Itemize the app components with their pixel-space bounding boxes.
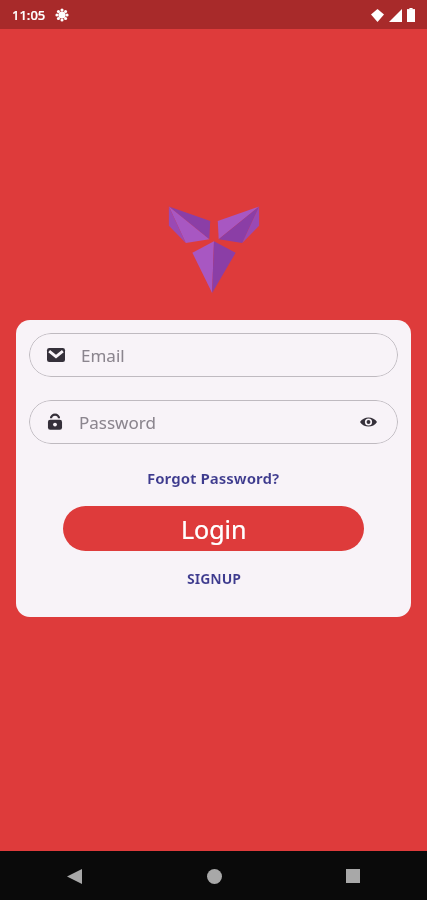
staticText: Email xyxy=(81,344,125,367)
button[interactable]: Show password xyxy=(357,413,380,431)
button[interactable]: SIGNUP xyxy=(181,567,247,590)
button[interactable]: Password xyxy=(29,400,398,444)
button[interactable]: Home xyxy=(192,854,236,898)
button[interactable]: Email xyxy=(29,333,398,377)
staticText: Password xyxy=(79,411,156,434)
staticText: Forgot Password? xyxy=(147,468,280,488)
button[interactable]: Back xyxy=(52,854,96,898)
button[interactable]: Forgot Password? xyxy=(141,466,286,490)
staticText: SIGNUP xyxy=(187,569,241,588)
button[interactable]: Recent apps xyxy=(331,854,375,898)
staticText: 11:05 xyxy=(12,6,46,24)
button[interactable]: Login xyxy=(63,506,364,551)
staticText: Login xyxy=(181,512,247,546)
